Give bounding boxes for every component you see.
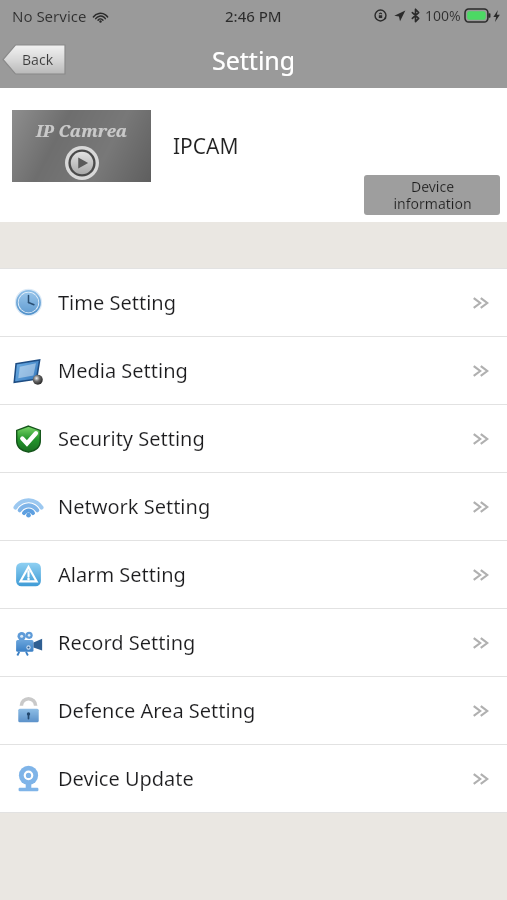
button[interactable]: Security Setting bbox=[0, 405, 507, 472]
staticText: Back bbox=[22, 50, 54, 69]
button[interactable]: Camera preview bbox=[12, 110, 151, 182]
button[interactable]: Defence Area Setting bbox=[0, 677, 507, 744]
staticText: Defence Area Setting bbox=[58, 697, 256, 724]
staticText: IP Camrea bbox=[36, 119, 128, 142]
staticText: 2:46 PM bbox=[225, 6, 282, 26]
staticText: Security Setting bbox=[58, 425, 205, 452]
staticText: IPCAM bbox=[173, 132, 239, 161]
staticText: 100% bbox=[425, 6, 461, 25]
button[interactable]: Alarm Setting bbox=[0, 541, 507, 608]
staticText: Media Setting bbox=[58, 357, 188, 384]
staticText: Device information bbox=[393, 177, 472, 213]
button[interactable]: Time Setting bbox=[0, 269, 507, 336]
staticText: Time Setting bbox=[58, 289, 176, 316]
button[interactable]: Back bbox=[3, 45, 65, 74]
staticText: No Service bbox=[12, 6, 87, 26]
staticText: Setting bbox=[212, 43, 296, 77]
button[interactable]: Network Setting bbox=[0, 473, 507, 540]
staticText: Alarm Setting bbox=[58, 561, 186, 588]
button[interactable]: Device information bbox=[364, 175, 500, 215]
staticText: Network Setting bbox=[58, 493, 211, 520]
button[interactable]: Media Setting bbox=[0, 337, 507, 404]
button[interactable]: Device Update bbox=[0, 745, 507, 812]
staticText: Device Update bbox=[58, 765, 194, 792]
staticText: Record Setting bbox=[58, 629, 196, 656]
button[interactable]: Record Setting bbox=[0, 609, 507, 676]
